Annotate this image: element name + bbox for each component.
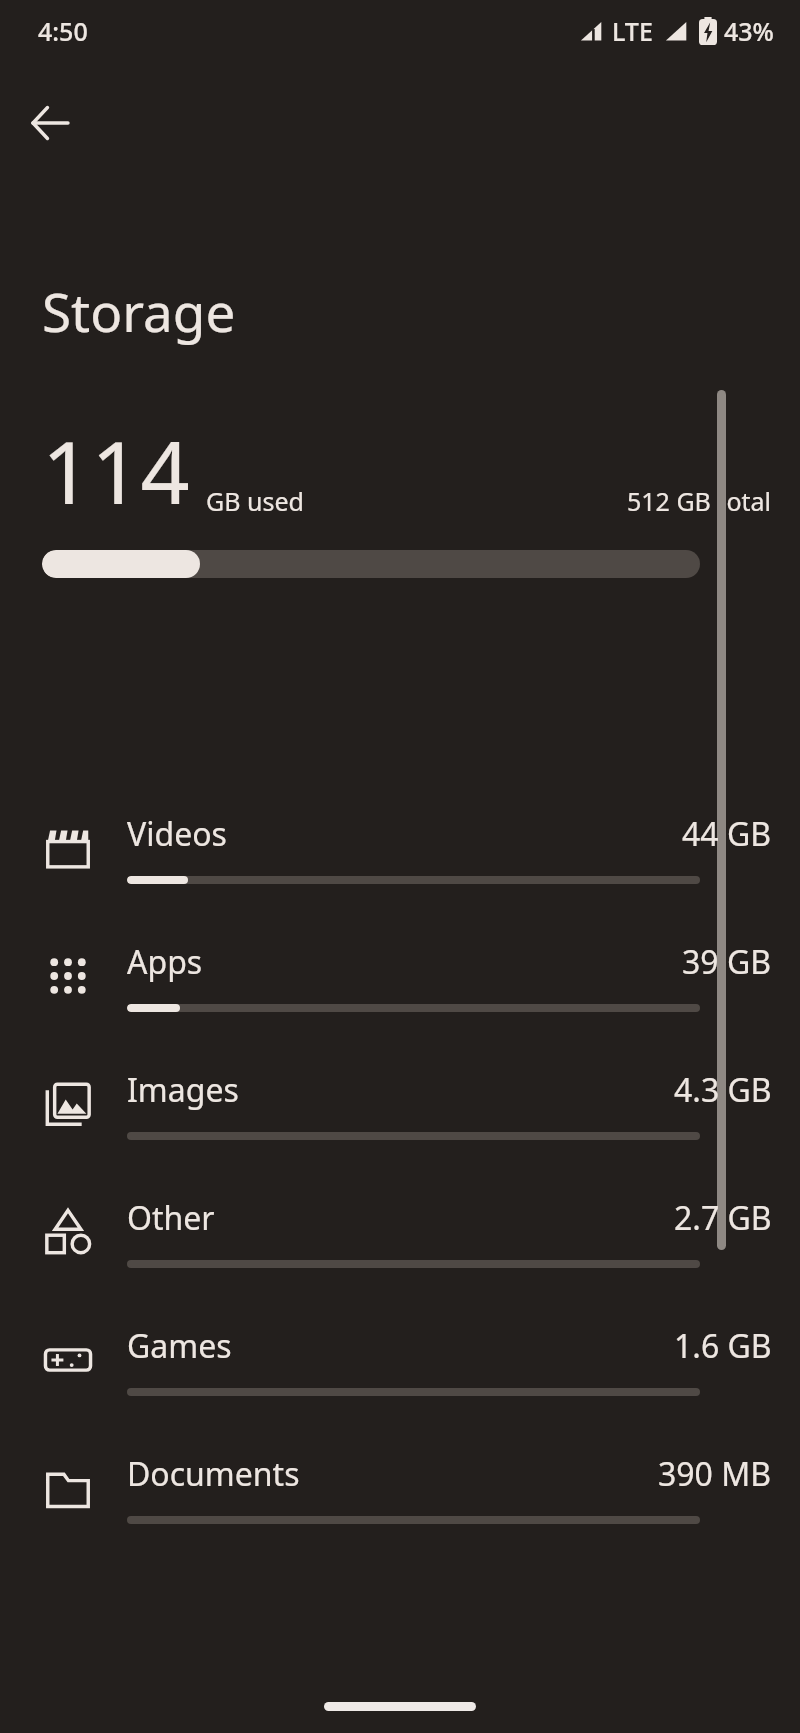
staticText: 1.6 GB bbox=[674, 1324, 772, 1368]
staticText: Other bbox=[127, 1196, 215, 1240]
staticText: Storage bbox=[42, 275, 236, 347]
staticText: 114 bbox=[42, 412, 190, 529]
staticText: Apps bbox=[127, 940, 203, 984]
staticText: 390 MB bbox=[658, 1452, 772, 1496]
button[interactable]: Images bbox=[0, 1046, 800, 1174]
button[interactable]: Other bbox=[0, 1174, 800, 1302]
staticText: Games bbox=[127, 1324, 232, 1368]
staticText: Documents bbox=[127, 1452, 300, 1496]
staticText: Videos bbox=[127, 812, 227, 856]
button[interactable]: Back bbox=[17, 90, 83, 156]
staticText: Images bbox=[127, 1068, 239, 1112]
staticText: 44 GB bbox=[682, 812, 772, 856]
button[interactable]: Videos bbox=[0, 790, 800, 918]
staticText: 43% bbox=[724, 14, 774, 48]
button[interactable]: Documents bbox=[0, 1430, 800, 1558]
staticText: 4.3 GB bbox=[674, 1068, 772, 1112]
staticText: 39 GB bbox=[682, 940, 772, 984]
staticText: LTE bbox=[612, 14, 653, 48]
button[interactable]: Games bbox=[0, 1302, 800, 1430]
staticText: GB used bbox=[206, 484, 304, 518]
staticText: 4:50 bbox=[38, 14, 88, 48]
staticText: 512 GB total bbox=[627, 484, 772, 518]
button[interactable]: Apps bbox=[0, 918, 800, 1046]
staticText: 2.7 GB bbox=[674, 1196, 772, 1240]
